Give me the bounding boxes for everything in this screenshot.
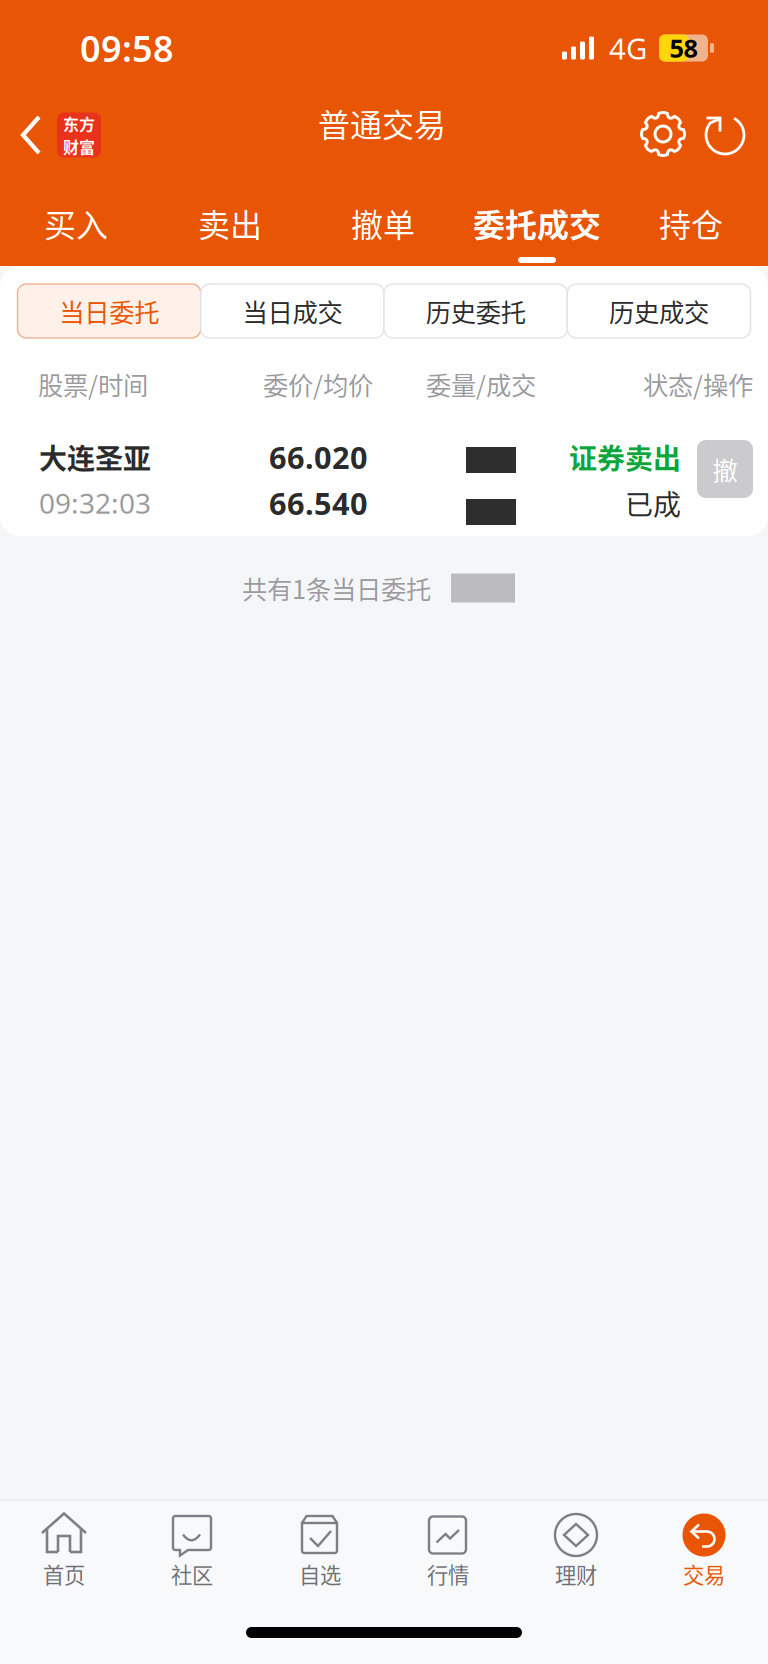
staticText: 66.540 (269, 482, 368, 524)
button[interactable]: 历史成交 (567, 284, 750, 338)
staticText: 委托成交 (473, 200, 601, 246)
staticText: 已成 (625, 483, 681, 523)
button[interactable]: 委托成交 (457, 180, 617, 266)
button[interactable]: 首页 (0, 1501, 128, 1601)
button[interactable]: 社区 (128, 1501, 256, 1601)
staticText: 共有1条当日委托 (242, 570, 431, 606)
button[interactable]: 撤 (697, 440, 753, 498)
button[interactable]: 理财 (512, 1501, 640, 1601)
button[interactable]: 撤单 (303, 180, 463, 266)
button[interactable]: 买入 (0, 180, 156, 266)
staticText: 行情 (427, 1559, 469, 1589)
button[interactable]: 当日成交 (201, 284, 384, 338)
button[interactable]: 行情 (384, 1501, 512, 1601)
staticText: 历史委托 (426, 293, 526, 329)
staticText: 社区 (171, 1559, 213, 1589)
staticText: 普通交易 (318, 100, 446, 146)
button[interactable]: 交易 (640, 1501, 768, 1601)
staticText: 历史成交 (609, 293, 709, 329)
staticText: 东方 财富 (63, 112, 95, 158)
staticText: 09:32:03 (39, 484, 151, 522)
staticText: 当日成交 (242, 293, 342, 329)
staticText: 58 (669, 31, 697, 65)
staticText: 交易 (683, 1559, 725, 1589)
staticText: 66.020 (269, 436, 368, 478)
staticText: 当日委托 (59, 293, 159, 329)
staticText: 4G (609, 28, 647, 68)
staticText: 证券卖出 (569, 437, 681, 477)
button[interactable]: Back (0, 96, 110, 180)
staticText: 委量/成交 (426, 366, 536, 402)
staticText: 卖出 (198, 200, 262, 246)
staticText: 撤单 (351, 200, 415, 246)
button[interactable]: 卖出 (150, 180, 310, 266)
staticText: 委价/均价 (263, 366, 373, 402)
staticText: 股票/时间 (38, 366, 148, 402)
staticText: 大连圣亚 (39, 437, 151, 477)
button[interactable]: Refresh (697, 107, 753, 163)
staticText: 理财 (555, 1559, 597, 1589)
staticText: 首页 (43, 1559, 85, 1589)
button[interactable]: 持仓 (611, 180, 768, 266)
button[interactable]: 当日委托 (17, 284, 201, 338)
button[interactable]: Settings (635, 106, 691, 162)
staticText: 买入 (44, 200, 108, 246)
staticText: 09:58 (80, 23, 174, 72)
staticText: 持仓 (659, 200, 723, 246)
staticText: 自选 (299, 1559, 341, 1589)
button[interactable]: 历史委托 (384, 284, 567, 338)
staticText: 状态/操作 (643, 366, 753, 402)
button[interactable]: 自选 (256, 1501, 384, 1601)
staticText: 撤 (712, 451, 737, 487)
